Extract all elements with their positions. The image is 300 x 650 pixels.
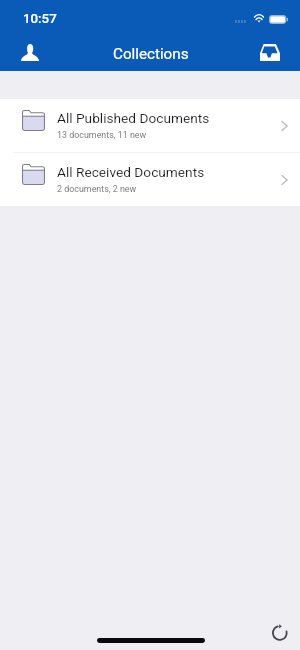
button[interactable]: All Published Documents bbox=[0, 99, 300, 152]
staticText: 13 documents, 11 new bbox=[57, 130, 147, 140]
staticText: Collections bbox=[113, 45, 189, 63]
button[interactable]: All Received Documents bbox=[0, 153, 300, 206]
staticText: 10:57 bbox=[23, 11, 57, 27]
staticText: All Received Documents bbox=[57, 164, 205, 180]
staticText: 2 documents, 2 new bbox=[57, 184, 137, 194]
button[interactable]: Inbox bbox=[249, 32, 291, 71]
button[interactable]: Account bbox=[9, 32, 51, 71]
staticText: All Published Documents bbox=[57, 110, 210, 126]
button[interactable]: Refresh bbox=[256, 608, 295, 647]
